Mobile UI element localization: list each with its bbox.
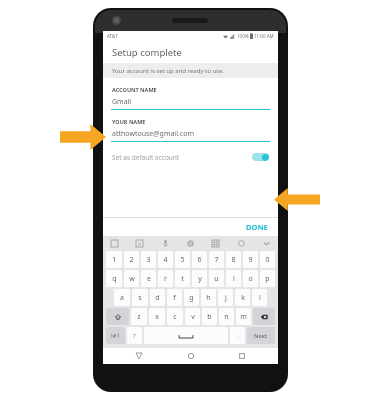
button[interactable]: o (243, 270, 258, 287)
button[interactable]: d (150, 289, 165, 306)
button[interactable]: Clipboard (210, 238, 221, 249)
staticText: u (214, 274, 219, 284)
button[interactable]: 5 (175, 251, 190, 268)
staticText: . (237, 332, 239, 340)
staticText: n (224, 312, 229, 322)
staticText: q (112, 274, 117, 284)
button[interactable]: 6 (192, 251, 207, 268)
button[interactable]: Recents (227, 348, 257, 364)
button[interactable]: p (260, 270, 275, 287)
button[interactable]: !#1 (106, 327, 125, 344)
button[interactable]: n (219, 308, 234, 325)
staticText: l (259, 293, 261, 303)
button[interactable]: u (209, 270, 224, 287)
button[interactable]: 3 (141, 251, 156, 268)
staticText: !#1 (111, 332, 120, 340)
button[interactable]: g (184, 289, 199, 306)
button[interactable]: x (149, 308, 165, 325)
staticText: b (207, 312, 212, 322)
staticText: a (120, 293, 124, 303)
staticText: AT&T (107, 33, 118, 39)
button[interactable]: a (114, 289, 130, 306)
button[interactable]: c (167, 308, 183, 325)
button[interactable]: ? (127, 327, 142, 344)
button[interactable]: . (230, 327, 245, 344)
button[interactable]: m (236, 308, 251, 325)
button[interactable]: atthowtouse@gmail.com (103, 127, 278, 142)
staticText: 6 (197, 255, 202, 265)
button[interactable]: Backspace (253, 308, 275, 325)
button[interactable]: l (252, 289, 267, 306)
button[interactable]: z (131, 308, 147, 325)
button[interactable]: e (141, 270, 156, 287)
button[interactable]: 2 (124, 251, 139, 268)
staticText: c (173, 312, 177, 322)
staticText: ? (133, 332, 136, 340)
staticText: 5 (180, 255, 185, 265)
staticText: 4 (163, 255, 168, 265)
button[interactable]: y (192, 270, 207, 287)
button[interactable]: i (226, 270, 241, 287)
button[interactable]: w (124, 270, 139, 287)
button[interactable]: r (158, 270, 173, 287)
button[interactable]: Collapse keyboard (261, 238, 272, 249)
button[interactable]: f (167, 289, 182, 306)
button[interactable]: b (202, 308, 217, 325)
button[interactable]: 7 (209, 251, 224, 268)
staticText: 11:00 AM (254, 33, 274, 39)
button[interactable]: k (235, 289, 250, 306)
button[interactable]: v (185, 308, 200, 325)
button[interactable]: 4 (158, 251, 173, 268)
button[interactable]: Home (176, 348, 206, 364)
staticText: 9 (248, 255, 253, 265)
button[interactable]: Help (236, 238, 247, 249)
staticText: z (137, 312, 141, 322)
button[interactable]: Theme (109, 238, 120, 249)
button[interactable]: Gmail (103, 95, 278, 110)
button[interactable]: Settings (185, 238, 196, 249)
staticText: Your account is set up and ready to use. (112, 67, 224, 75)
staticText: h (206, 293, 211, 303)
button[interactable]: 0 (260, 251, 275, 268)
button[interactable]: t (175, 270, 190, 287)
staticText: i (233, 274, 235, 284)
staticText: ACCOUNT NAME (112, 86, 157, 93)
staticText: 100% (237, 33, 249, 39)
button[interactable]: s (132, 289, 148, 306)
staticText: 8 (231, 255, 236, 265)
button[interactable]: Shift (106, 308, 129, 325)
button[interactable]: h (201, 289, 216, 306)
button[interactable]: q (106, 270, 122, 287)
staticText: DONE (246, 222, 268, 232)
staticText: v (191, 312, 195, 322)
button[interactable]: DONE (236, 219, 278, 235)
button[interactable]: j (218, 289, 233, 306)
staticText: r (164, 274, 167, 284)
button[interactable]: Voice input (160, 238, 171, 249)
button[interactable]: 1 (106, 251, 122, 268)
button[interactable]: Back (124, 348, 154, 364)
button[interactable]: 8 (226, 251, 241, 268)
staticText: w (129, 274, 135, 284)
staticText: j (225, 293, 227, 303)
staticText: m (240, 312, 247, 322)
staticText: d (155, 293, 160, 303)
staticText: o (248, 274, 253, 284)
button[interactable]: Next (247, 327, 275, 344)
button[interactable]: Emoji (134, 238, 145, 249)
staticText: e (147, 274, 151, 284)
staticText: 2 (129, 255, 134, 265)
staticText: Next (254, 332, 268, 340)
staticText: Setup complete (112, 46, 182, 59)
staticText: g (189, 293, 194, 303)
button[interactable]: 9 (243, 251, 258, 268)
button[interactable]: Space (144, 327, 228, 344)
staticText: t (181, 274, 184, 284)
staticText: 1 (112, 255, 117, 265)
staticText: Set as default account (112, 153, 180, 162)
button[interactable]: Set as default account (103, 149, 278, 165)
staticText: YOUR NAME (112, 118, 146, 125)
staticText: 0 (265, 255, 270, 265)
staticText: p (265, 274, 270, 284)
staticText: y (198, 274, 202, 284)
